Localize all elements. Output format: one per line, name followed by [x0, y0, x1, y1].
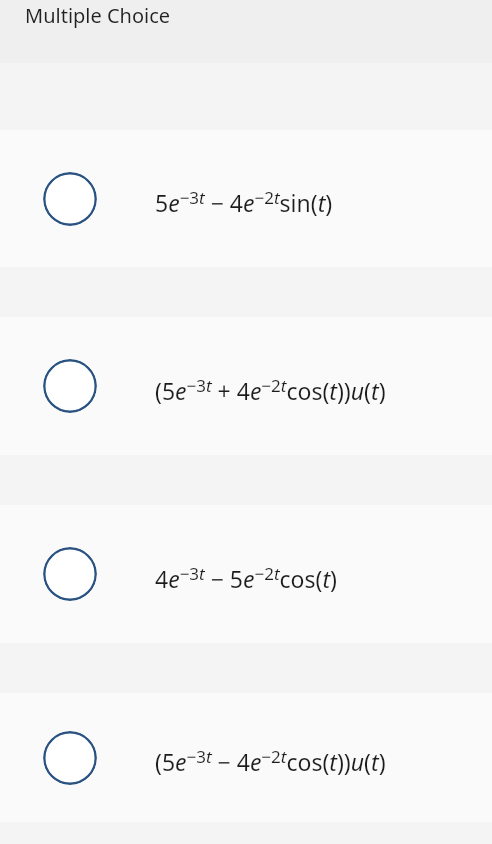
button[interactable]: Select answer option [0, 693, 492, 822]
staticText: 5e−3t − 4e−2tsin(t) [155, 186, 333, 219]
button[interactable]: Select answer option [0, 505, 492, 643]
other: Select answer option [43, 731, 97, 785]
staticText: 4e−3t − 5e−2tcos(t) [155, 562, 337, 595]
button[interactable]: Select answer option [0, 130, 492, 267]
other: Select answer option [43, 359, 97, 413]
button[interactable]: Select answer option [0, 317, 492, 455]
staticText: Multiple Choice [25, 2, 171, 29]
other: Select answer option [43, 172, 97, 226]
other: Select answer option [43, 547, 97, 601]
staticText: (5e−3t + 4e−2tcos(t))u(t) [155, 374, 386, 407]
staticText: (5e−3t − 4e−2tcos(t))u(t) [155, 745, 386, 778]
